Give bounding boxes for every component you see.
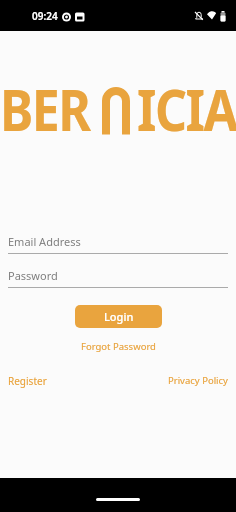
staticText: Login <box>104 309 134 324</box>
button[interactable]: Forgot Password <box>81 340 156 353</box>
staticText: 09:24 <box>32 9 58 23</box>
button[interactable]: Login <box>75 305 162 328</box>
staticText: BER <box>0 69 90 148</box>
button[interactable]: Register <box>8 374 47 388</box>
staticText: Register <box>8 374 47 388</box>
staticText: Password <box>8 268 58 283</box>
button[interactable]: Privacy Policy <box>168 374 228 387</box>
staticText: Forgot Password <box>81 340 156 353</box>
button[interactable]: Email Address <box>0 232 236 254</box>
staticText: Privacy Policy <box>168 374 228 387</box>
button[interactable]: Password <box>0 266 236 288</box>
staticText: Email Address <box>8 234 81 249</box>
staticText: ICIA <box>137 69 236 148</box>
